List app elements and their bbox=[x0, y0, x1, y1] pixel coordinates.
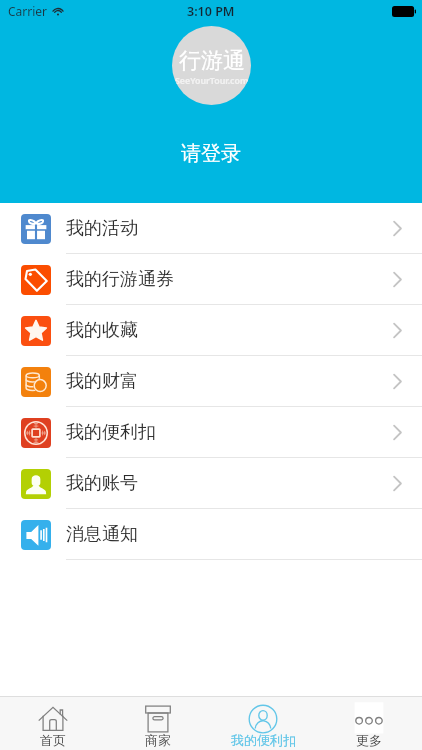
staticText: 更多 bbox=[356, 732, 382, 748]
staticText: 商家 bbox=[145, 732, 171, 748]
button[interactable]: 我的便利扣 bbox=[0, 407, 422, 458]
staticText: 首页 bbox=[40, 732, 66, 748]
staticText: 我的财富 bbox=[66, 370, 138, 393]
staticText: SeeYourTour.com bbox=[175, 75, 249, 87]
button[interactable]: 我的便利扣 bbox=[210, 697, 316, 750]
button[interactable]: 请登录 bbox=[181, 141, 241, 166]
button[interactable]: 我的财富 bbox=[0, 356, 422, 407]
button[interactable]: 消息通知 bbox=[0, 509, 422, 560]
staticText: Carrier bbox=[8, 3, 48, 19]
staticText: 消息通知 bbox=[66, 523, 138, 546]
button[interactable]: 我的账号 bbox=[0, 458, 422, 509]
button[interactable]: 我的收藏 bbox=[0, 305, 422, 356]
button[interactable]: 我的活动 bbox=[0, 203, 422, 254]
button[interactable]: 更多 bbox=[316, 697, 422, 750]
staticText: 我的行游通券 bbox=[66, 268, 174, 291]
staticText: 我的便利扣 bbox=[231, 732, 296, 748]
button[interactable]: 首页 bbox=[0, 697, 105, 750]
button[interactable]: 我的行游通券 bbox=[0, 254, 422, 305]
staticText: 我的账号 bbox=[66, 472, 138, 495]
staticText: 3:10 PM bbox=[187, 3, 235, 20]
staticText: 行游通 bbox=[179, 47, 245, 75]
button[interactable]: 商家 bbox=[105, 697, 210, 750]
staticText: 我的活动 bbox=[66, 217, 138, 240]
staticText: 我的收藏 bbox=[66, 319, 138, 342]
staticText: 我的便利扣 bbox=[66, 421, 156, 444]
